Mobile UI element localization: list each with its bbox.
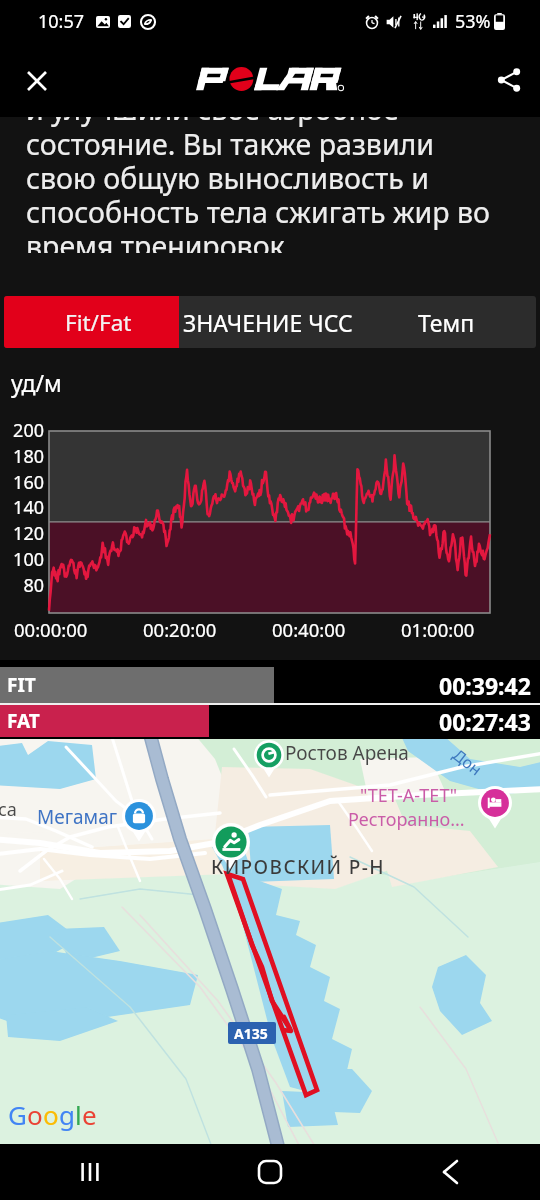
staticText: 00:39:42 bbox=[439, 670, 531, 701]
staticText: 01:00:00 bbox=[401, 617, 475, 642]
staticText: FAT bbox=[7, 708, 40, 734]
staticText: 00:00:00 bbox=[14, 617, 88, 642]
staticText: ca bbox=[0, 797, 17, 822]
staticText: o bbox=[27, 1097, 43, 1132]
staticText: Мегамаг bbox=[37, 804, 118, 830]
staticText: Ресторанно... bbox=[348, 807, 465, 832]
staticText: 140 bbox=[13, 495, 44, 520]
staticText: 100 bbox=[13, 547, 44, 572]
staticText: e bbox=[82, 1097, 97, 1132]
staticText: Fit/Fat bbox=[65, 307, 132, 338]
staticText: Ростов Арена bbox=[285, 740, 409, 766]
staticText: 00:27:43 bbox=[439, 706, 531, 737]
staticText: Дон bbox=[448, 744, 486, 780]
staticText: "ТЕТ-А-ТЕТ" bbox=[360, 783, 458, 808]
staticText: уд/м bbox=[11, 367, 62, 398]
staticText: ЗНАЧЕНИЕ ЧСС bbox=[183, 307, 353, 338]
staticText: A135 bbox=[234, 1024, 268, 1043]
button[interactable]: Home bbox=[180, 1144, 360, 1200]
staticText: G bbox=[8, 1097, 27, 1132]
staticText: g bbox=[59, 1097, 75, 1132]
staticText: FIT bbox=[7, 672, 36, 698]
button[interactable]: Close bbox=[9, 53, 64, 108]
button[interactable]: Recents bbox=[0, 1144, 180, 1200]
staticText: 160 bbox=[13, 470, 44, 495]
staticText: КИРОВСКИЙ Р-Н bbox=[211, 854, 385, 880]
staticText: 120 bbox=[13, 521, 44, 546]
staticText: 80 bbox=[23, 573, 44, 598]
staticText: 00:20:00 bbox=[143, 617, 217, 642]
staticText: Темп bbox=[418, 307, 475, 338]
staticText: 200 bbox=[13, 418, 44, 443]
staticText: o bbox=[43, 1097, 59, 1132]
staticText: l bbox=[75, 1097, 82, 1132]
button[interactable]: ЗНАЧЕНИЕ ЧСС bbox=[179, 296, 357, 348]
staticText: 00:40:00 bbox=[272, 617, 346, 642]
button[interactable]: Share bbox=[481, 52, 536, 107]
button[interactable]: Fit/Fat bbox=[4, 296, 179, 348]
staticText: 53% bbox=[455, 9, 491, 34]
button[interactable]: Back bbox=[360, 1144, 540, 1200]
staticText: 10:57 bbox=[38, 9, 85, 34]
staticText: 180 bbox=[13, 444, 44, 469]
button[interactable]: Темп bbox=[357, 296, 536, 348]
staticText: и улучшили своё аэробное состояние. Вы т… bbox=[26, 90, 490, 253]
